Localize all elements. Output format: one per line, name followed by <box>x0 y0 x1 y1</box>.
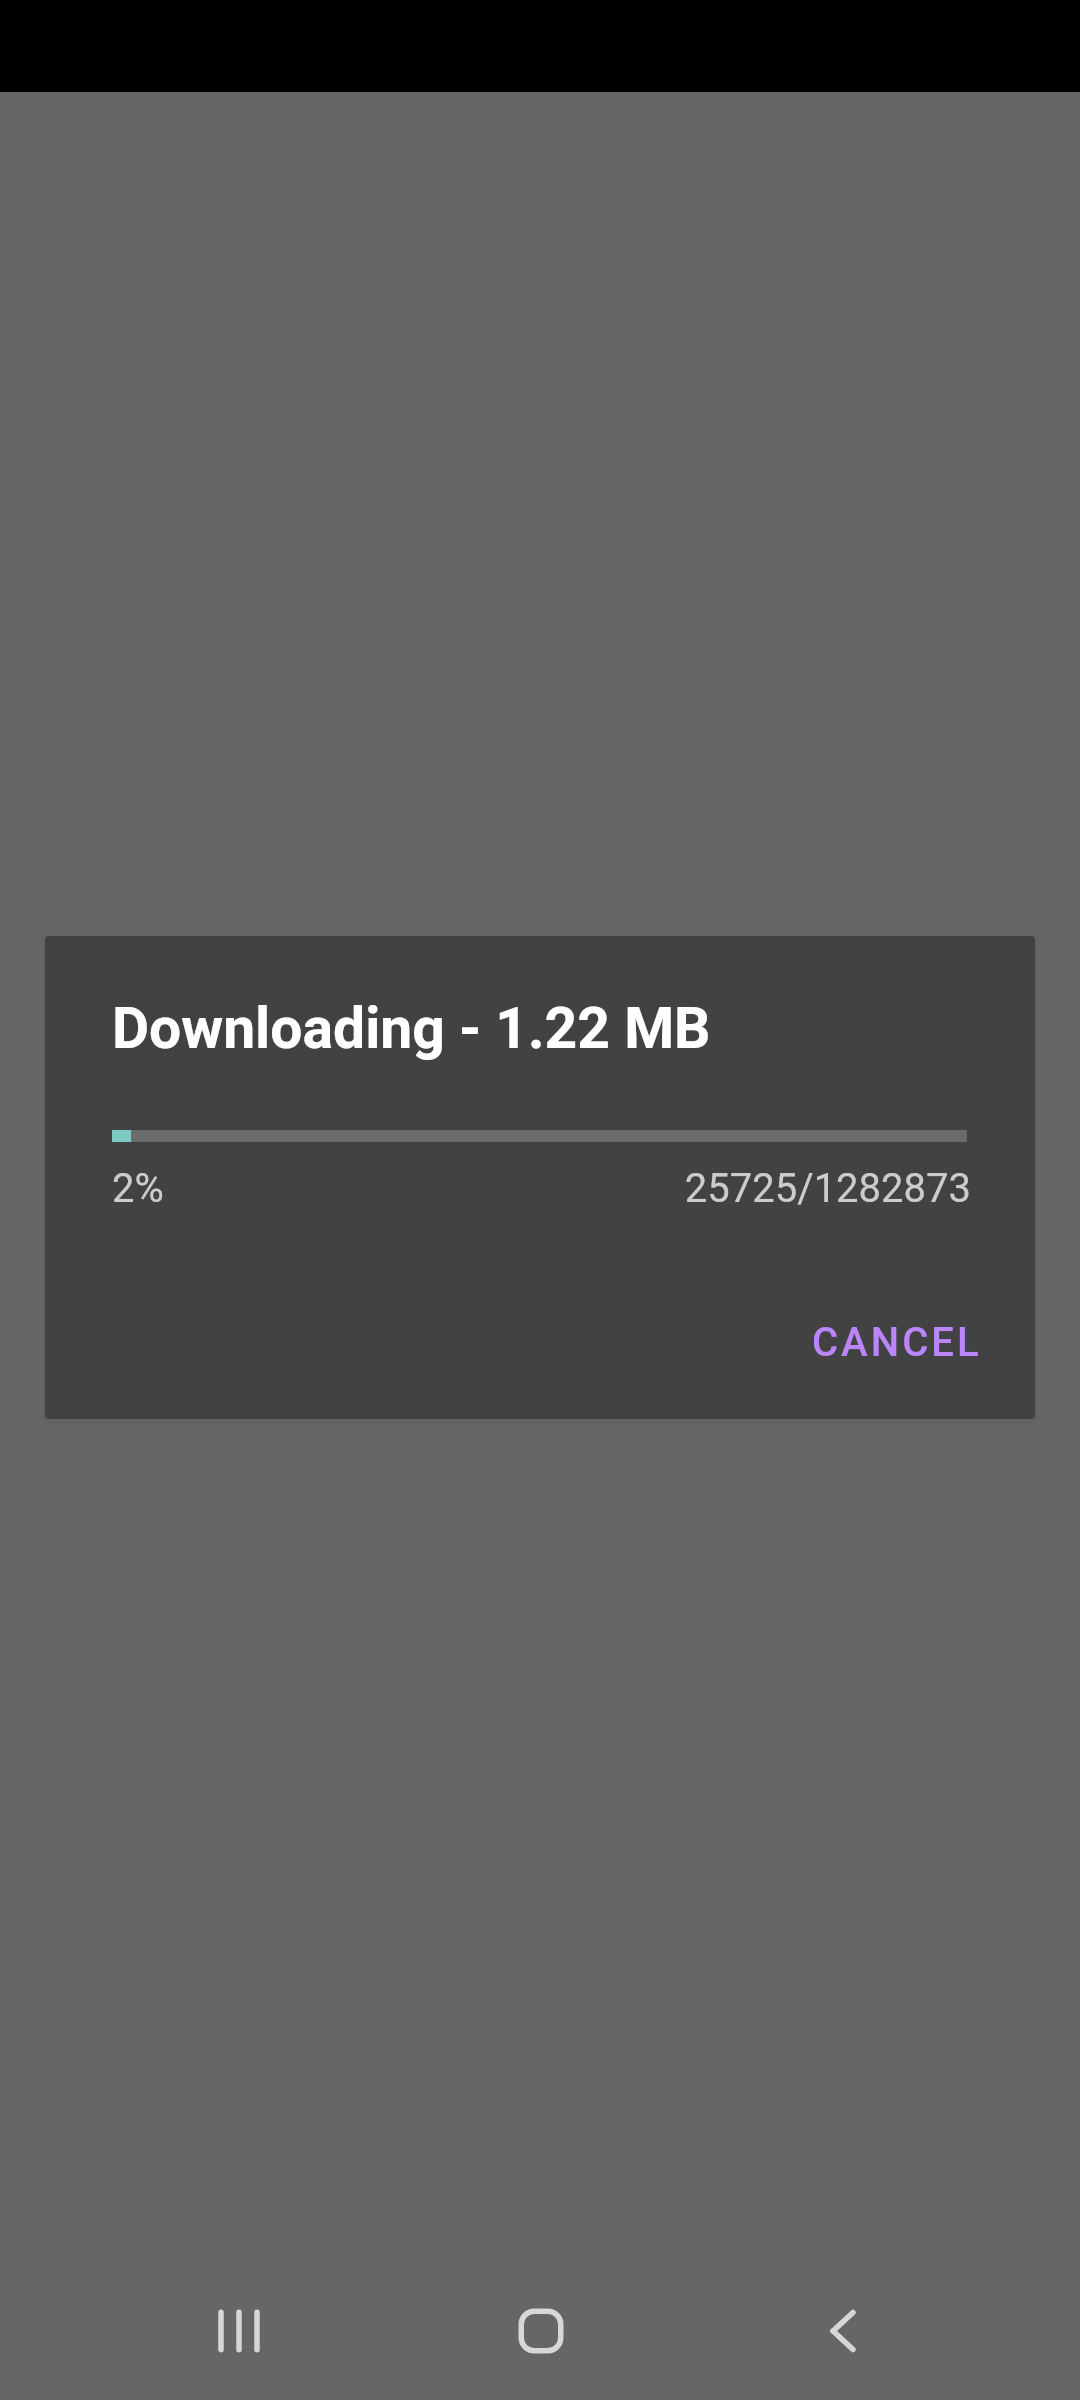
button[interactable]: Home <box>481 2271 601 2391</box>
button[interactable]: Recents <box>179 2271 299 2391</box>
staticText: CANCEL <box>812 1319 982 1366</box>
staticText: Downloading - 1.22 MB <box>112 995 711 1062</box>
staticText: 2% <box>112 1165 164 1212</box>
button[interactable]: CANCEL <box>802 1291 992 1393</box>
button[interactable]: Back <box>783 2271 903 2391</box>
staticText: 25725/1282873 <box>112 1165 971 1212</box>
